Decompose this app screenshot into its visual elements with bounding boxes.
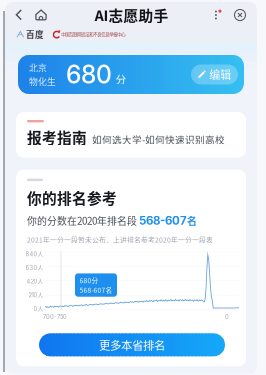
staticText: 840人: [25, 250, 43, 258]
staticText: 你的分数在2020年排名段: [27, 213, 139, 228]
staticText: 0: [225, 313, 229, 320]
staticText: AI志愿助手: [94, 4, 168, 26]
staticText: 2021年一分一段暂未公布，上进排名参考2020年一分一段表: [27, 235, 213, 244]
button[interactable]: More options: [210, 4, 230, 26]
staticText: 百度: [26, 28, 44, 40]
button[interactable]: 北京: [18, 55, 244, 94]
button[interactable]: 报考指南: [16, 112, 246, 158]
staticText: 分: [115, 71, 126, 86]
staticText: 你的排名参考: [27, 187, 117, 208]
staticText: 名: [187, 213, 197, 228]
staticText: 0人: [33, 305, 43, 312]
staticText: 更多本省排名: [99, 336, 165, 353]
staticText: 编辑: [209, 67, 231, 82]
button[interactable]: Home: [29, 4, 53, 26]
staticText: 700-750: [43, 313, 67, 320]
staticText: 北京: [29, 61, 47, 74]
button[interactable]: Close: [230, 4, 250, 26]
button[interactable]: Back: [9, 4, 29, 26]
staticText: 如何选大学-如何快速识别高校: [92, 132, 225, 146]
staticText: 680分: [79, 275, 98, 285]
staticText: 物化生: [29, 75, 56, 88]
staticText: 中国互联网违法和不良信息举报中心: [61, 31, 125, 37]
staticText: 210人: [28, 291, 43, 299]
staticText: 568-607名: [79, 285, 112, 295]
staticText: 420人: [26, 278, 43, 285]
staticText: 568-607: [139, 214, 187, 227]
staticText: 630人: [25, 264, 43, 271]
staticText: 报考指南: [27, 126, 87, 148]
button[interactable]: 更多本省排名: [39, 333, 225, 356]
staticText: 680: [66, 60, 112, 89]
